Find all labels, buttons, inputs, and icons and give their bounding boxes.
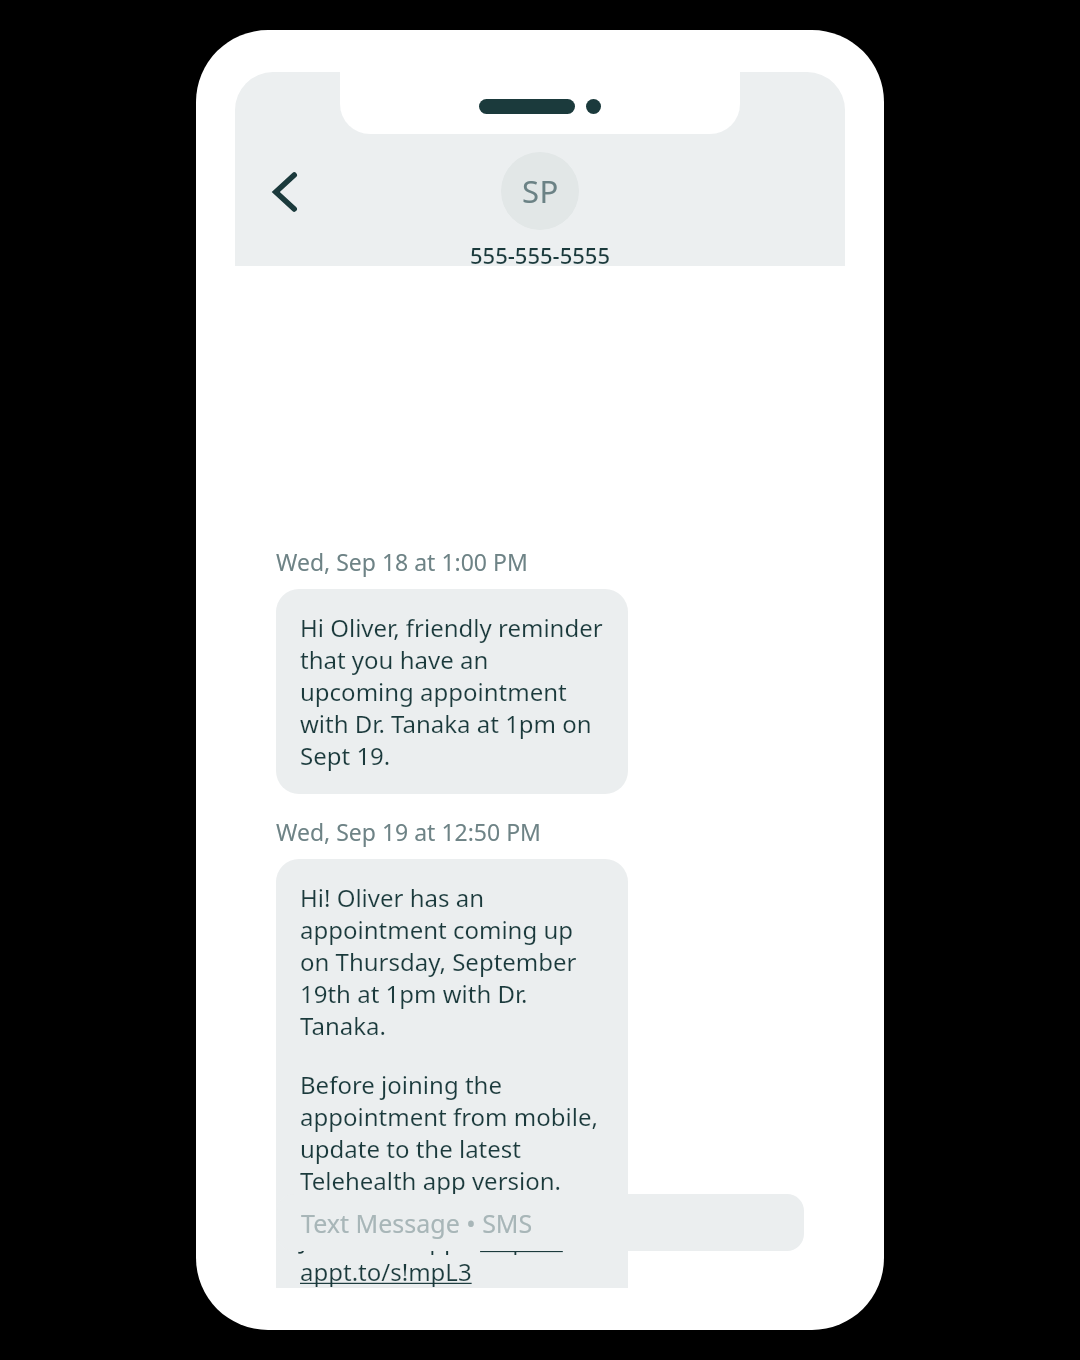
staticText: Hi! Oliver has an appointment coming up … — [300, 881, 604, 1042]
button[interactable]: Hi Oliver, friendly reminder that you ha… — [276, 589, 628, 794]
button[interactable]: Hi! Oliver has an appointment coming up … — [276, 859, 628, 1288]
staticText: Wed, Sep 18 at 1:00 PM — [276, 546, 528, 577]
button[interactable]: SP — [470, 152, 610, 270]
staticText: Hi Oliver, friendly reminder that you ha… — [300, 611, 604, 772]
staticText: Text Message • SMS — [301, 1206, 533, 1240]
button[interactable]: Text Message • SMS — [277, 1194, 804, 1251]
staticText: SP — [522, 170, 559, 212]
staticText: Before joining the appointment from mobi… — [300, 1068, 604, 1197]
staticText: Wed, Sep 19 at 12:50 PM — [276, 816, 541, 847]
staticText: Join video appt: https://appt.to/s!mpL3 — [300, 1223, 604, 1288]
button[interactable]: Back — [257, 164, 313, 220]
staticText: 555-555-5555 — [470, 240, 610, 270]
